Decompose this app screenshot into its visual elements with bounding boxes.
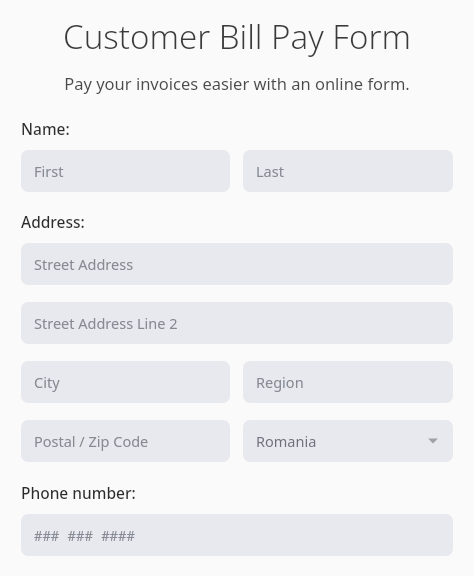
button[interactable]: City [21,361,230,403]
staticText: Street Address Line 2 [34,313,178,333]
staticText: First [34,161,64,181]
staticText: Pay your invoices easier with an online … [12,72,462,94]
staticText: Customer Bill Pay Form [12,14,462,59]
button[interactable]: Street Address [21,243,453,285]
button[interactable]: Postal / Zip Code [21,420,230,462]
staticText: Postal / Zip Code [34,431,149,451]
staticText: Address: [21,211,85,232]
button[interactable]: ### ### #### [21,514,453,556]
button[interactable]: First [21,150,230,192]
button[interactable]: Region [243,361,453,403]
staticText: Romania [256,431,317,451]
staticText: ### ### #### [34,526,135,545]
other: Select country [426,434,440,448]
staticText: Street Address [34,254,134,274]
button[interactable]: Romania [243,420,453,462]
button[interactable]: Street Address Line 2 [21,302,453,344]
staticText: Phone number: [21,482,136,503]
staticText: Region [256,372,304,392]
staticText: City [34,372,60,392]
button[interactable]: Last [243,150,453,192]
staticText: Name: [21,118,70,139]
staticText: Last [256,161,284,181]
